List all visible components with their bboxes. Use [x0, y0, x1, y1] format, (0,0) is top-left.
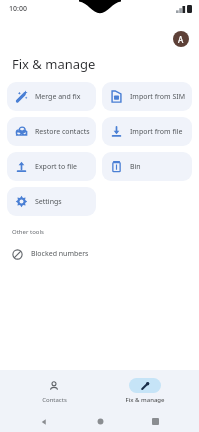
staticText: Fix & manage — [125, 396, 165, 404]
staticText: Fix & manage — [12, 55, 96, 73]
staticText: 10:00 — [9, 4, 27, 14]
button[interactable]: Contacts — [16, 370, 92, 411]
button[interactable]: Home — [88, 411, 112, 432]
staticText: Import from file — [130, 127, 183, 137]
button[interactable]: Blocked numbers — [0, 243, 199, 265]
button[interactable]: Bin — [102, 152, 192, 181]
staticText: Export to file — [35, 162, 77, 172]
staticText: Merge and fix — [35, 92, 81, 102]
button[interactable]: Account — [173, 31, 189, 47]
button[interactable]: Back — [32, 411, 56, 432]
button[interactable]: Recents — [143, 411, 167, 432]
button[interactable]: Import from SIM — [102, 82, 192, 111]
staticText: Contacts — [42, 396, 67, 404]
button[interactable]: Restore contacts — [7, 117, 96, 146]
staticText: Import from SIM — [130, 92, 186, 102]
button[interactable]: Fix & manage — [107, 370, 183, 411]
staticText: Blocked numbers — [31, 249, 89, 259]
button[interactable]: Import from file — [102, 117, 192, 146]
button[interactable]: Settings — [7, 187, 96, 216]
staticText: A — [178, 34, 184, 45]
staticText: Restore contacts — [35, 127, 90, 137]
staticText: Settings — [35, 197, 62, 207]
staticText: Other tools — [12, 228, 44, 236]
button[interactable]: Export to file — [7, 152, 96, 181]
button[interactable]: Merge and fix — [7, 82, 96, 111]
staticText: Bin — [130, 162, 141, 172]
